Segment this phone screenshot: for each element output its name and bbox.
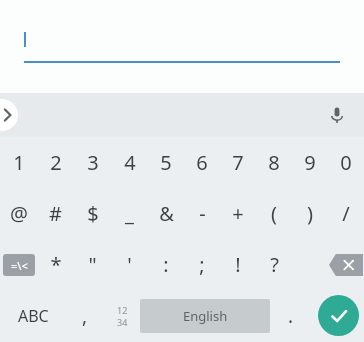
staticText: & <box>159 200 174 227</box>
staticText: " <box>88 251 97 278</box>
button[interactable]: + <box>220 188 256 239</box>
button[interactable]: Done <box>318 295 359 336</box>
button[interactable]: ( <box>256 188 292 239</box>
staticText: 3 <box>87 149 99 176</box>
button[interactable]: 1 <box>0 137 37 188</box>
button[interactable]: @ <box>0 188 37 239</box>
button[interactable]: 8 <box>256 137 292 188</box>
button[interactable]: Voice input <box>320 98 354 132</box>
button[interactable]: ? <box>256 239 292 290</box>
staticText: 0 <box>340 149 352 176</box>
button[interactable]: , <box>66 290 104 341</box>
staticText: + <box>232 200 244 227</box>
staticText: / <box>342 200 350 227</box>
staticText: ? <box>270 251 279 278</box>
button[interactable]: ABC <box>0 290 66 341</box>
staticText: $ <box>87 200 99 227</box>
button[interactable]: # <box>37 188 74 239</box>
staticText: ( <box>271 200 277 227</box>
button[interactable]: : <box>148 239 184 290</box>
button[interactable]: English <box>140 299 270 333</box>
button[interactable]: 0 <box>328 137 364 188</box>
staticText: 2 <box>50 149 62 176</box>
staticText: ; <box>199 251 205 278</box>
button[interactable]: ; <box>184 239 220 290</box>
staticText: =\< <box>11 258 28 273</box>
button[interactable]: Backspace <box>328 239 364 290</box>
staticText: ! <box>235 251 241 278</box>
staticText: 9 <box>304 149 316 176</box>
button[interactable]: 5 <box>148 137 184 188</box>
button[interactable]: $ <box>74 188 111 239</box>
staticText: 1 <box>13 149 25 176</box>
button[interactable]: - <box>184 188 220 239</box>
button[interactable]: * <box>37 239 74 290</box>
button[interactable]: 6 <box>184 137 220 188</box>
button[interactable]: More symbols <box>0 239 37 290</box>
staticText: - <box>199 200 206 227</box>
staticText: 34 <box>117 316 128 328</box>
staticText: , <box>82 303 88 329</box>
button[interactable]: _ <box>111 188 148 239</box>
staticText: ) <box>307 200 313 227</box>
staticText: 12 <box>117 304 128 316</box>
staticText: ABC <box>18 305 49 327</box>
button[interactable]: 4 <box>111 137 148 188</box>
staticText: ' <box>127 251 132 278</box>
staticText: * <box>50 251 62 278</box>
staticText: 5 <box>160 149 172 176</box>
staticText: 8 <box>268 149 280 176</box>
button[interactable]: " <box>74 239 111 290</box>
staticText: : <box>163 251 169 278</box>
staticText: English <box>183 307 228 325</box>
staticText: _ <box>125 200 134 227</box>
button[interactable]: 9 <box>292 137 328 188</box>
button[interactable]: 3 <box>74 137 111 188</box>
button[interactable]: & <box>148 188 184 239</box>
button[interactable]: Number keypad <box>104 290 140 341</box>
staticText: 7 <box>232 149 244 176</box>
staticText: 6 <box>196 149 208 176</box>
staticText: . <box>288 303 294 329</box>
button[interactable]: 2 <box>37 137 74 188</box>
button[interactable]: ! <box>220 239 256 290</box>
staticText: @ <box>10 200 28 227</box>
button[interactable]: Expand suggestions <box>0 99 18 131</box>
button[interactable]: ' <box>111 239 148 290</box>
button[interactable]: 7 <box>220 137 256 188</box>
button[interactable]: / <box>328 188 364 239</box>
button[interactable]: ) <box>292 188 328 239</box>
button[interactable]: . <box>270 290 312 341</box>
staticText: # <box>49 200 62 227</box>
staticText: 4 <box>124 149 136 176</box>
